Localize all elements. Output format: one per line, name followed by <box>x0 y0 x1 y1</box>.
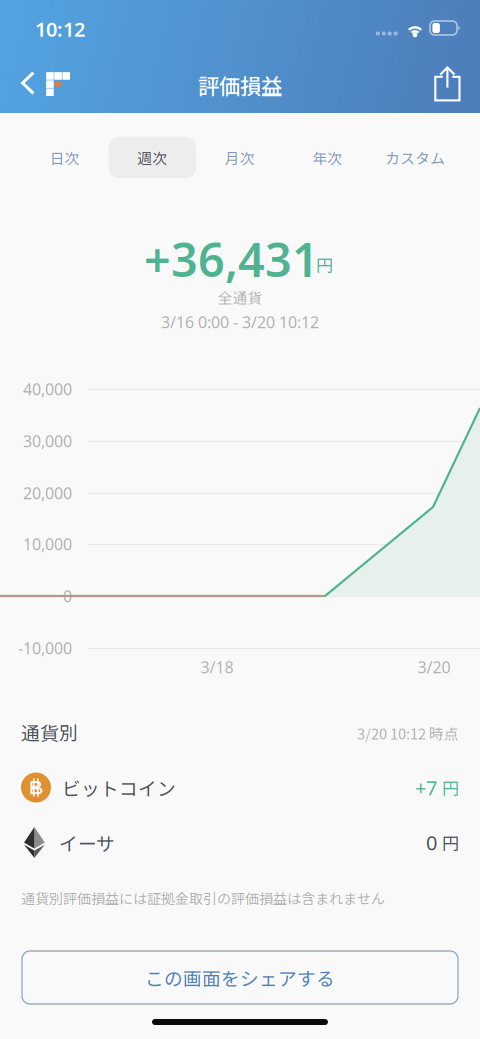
staticText: 10,000 <box>23 533 72 555</box>
button[interactable]: 月次 <box>196 137 284 178</box>
staticText: 3/20 10:12 時点 <box>357 722 459 744</box>
staticText: 20,000 <box>23 482 72 504</box>
staticText: 10:12 <box>35 16 85 42</box>
button[interactable]: 週次 <box>109 137 196 178</box>
staticText: +7 <box>415 774 437 801</box>
staticText: 40,000 <box>23 378 72 400</box>
button[interactable]: 年次 <box>284 137 371 178</box>
staticText: 通貨別評価損益には証拠金取引の評価損益は含まれません <box>21 888 385 908</box>
staticText: 円 <box>442 775 459 800</box>
staticText: イーサ <box>59 829 115 856</box>
staticText: 0 <box>63 585 72 607</box>
button[interactable]: ビットコイン <box>0 0 480 55</box>
staticText: 月次 <box>225 147 255 168</box>
staticText: 3/16 0:00 - 3/20 10:12 <box>161 311 319 333</box>
staticText: 30,000 <box>23 430 72 452</box>
staticText: 年次 <box>313 147 343 168</box>
staticText: 3/18 <box>200 656 233 678</box>
staticText: 0 <box>426 829 437 856</box>
staticText: 円 <box>316 252 333 277</box>
staticText: ビットコイン <box>62 774 176 801</box>
staticText: 通貨別 <box>21 718 78 745</box>
button[interactable]: Back <box>0 0 74 44</box>
button[interactable]: 日次 <box>21 137 109 178</box>
staticText: カスタム <box>385 147 445 168</box>
staticText: 日次 <box>50 147 80 168</box>
staticText: +36,431 <box>144 228 319 290</box>
button[interactable]: この画面をシェアする <box>0 0 436 53</box>
staticText: -10,000 <box>18 637 72 659</box>
staticText: 3/20 <box>417 656 450 678</box>
staticText: 全通貨 <box>217 286 262 308</box>
button[interactable]: Share <box>0 0 40 44</box>
staticText: 週次 <box>137 147 167 168</box>
button[interactable]: イーサ <box>0 0 480 55</box>
staticText: 円 <box>442 830 459 855</box>
staticText: 評価損益 <box>198 70 282 100</box>
button[interactable]: カスタム <box>371 137 459 178</box>
staticText: この画面をシェアする <box>145 964 335 991</box>
